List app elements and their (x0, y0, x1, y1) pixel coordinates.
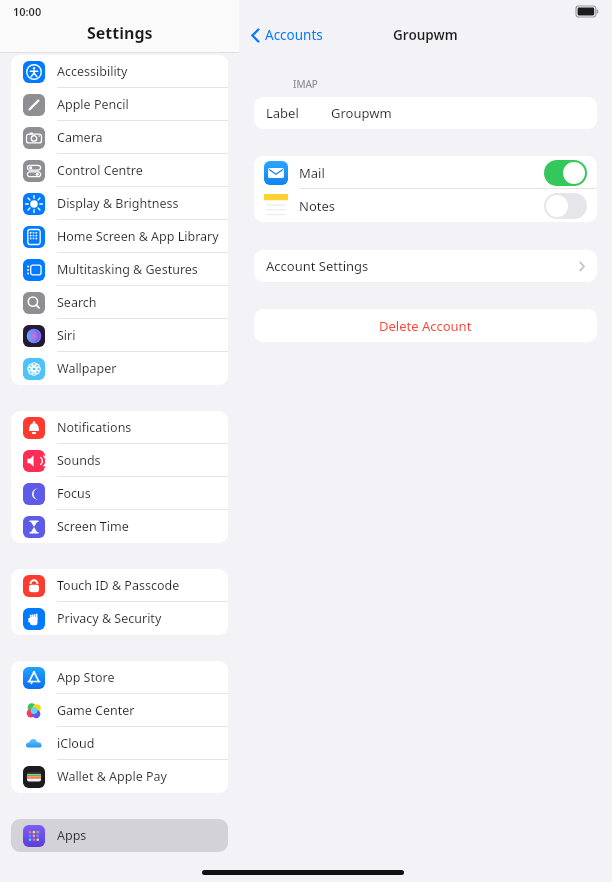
button[interactable]: Accounts (247, 23, 327, 47)
button[interactable]: Camera (11, 121, 228, 154)
button[interactable]: Screen Time (11, 510, 228, 543)
staticText: Sounds (57, 452, 101, 469)
staticText: Home Screen & App Library (57, 228, 219, 245)
staticText: IMAP (293, 77, 318, 91)
staticText: Accounts (265, 26, 323, 44)
staticText: Camera (57, 129, 103, 146)
staticText: Screen Time (57, 518, 129, 535)
button[interactable]: Home Screen & App Library (11, 220, 228, 253)
staticText: Game Center (57, 702, 135, 719)
staticText: Wallet & Apple Pay (57, 768, 167, 785)
button[interactable]: Accessibility (11, 55, 228, 88)
button[interactable]: On (544, 160, 587, 186)
staticText: Multitasking & Gestures (57, 261, 198, 278)
button[interactable]: Privacy & Security (11, 602, 228, 635)
staticText: Display & Brightness (57, 195, 179, 212)
staticText: 10:00 (13, 4, 42, 19)
staticText: Label (266, 104, 299, 122)
button[interactable]: Sounds (11, 444, 228, 477)
staticText: Groupwm (331, 104, 392, 122)
button[interactable]: Notes (254, 189, 597, 222)
button[interactable]: Focus (11, 477, 228, 510)
staticText: Touch ID & Passcode (57, 577, 180, 594)
staticText: Delete Account (379, 317, 472, 335)
staticText: Mail (299, 164, 325, 182)
staticText: Privacy & Security (57, 610, 162, 627)
staticText: Notes (299, 197, 335, 215)
button[interactable]: Control Centre (11, 154, 228, 187)
button[interactable]: Notifications (11, 411, 228, 444)
staticText: Siri (57, 327, 76, 344)
button[interactable]: Account Settings (254, 250, 597, 282)
button[interactable]: Off (544, 193, 587, 219)
button[interactable]: Mail (254, 156, 597, 189)
button[interactable]: Display & Brightness (11, 187, 228, 220)
staticText: Apps (57, 827, 87, 844)
staticText: Control Centre (57, 162, 143, 179)
staticText: Account Settings (266, 257, 369, 275)
button[interactable]: Apps (11, 819, 228, 852)
button[interactable]: Wallpaper (11, 352, 228, 385)
button[interactable]: Siri (11, 319, 228, 352)
staticText: iCloud (57, 735, 95, 752)
staticText: Wallpaper (57, 360, 117, 377)
staticText: Notifications (57, 419, 132, 436)
button[interactable]: Touch ID & Passcode (11, 569, 228, 602)
button[interactable]: Apple Pencil (11, 88, 228, 121)
button[interactable]: Game Center (11, 694, 228, 727)
button[interactable]: Search (11, 286, 228, 319)
staticText: Groupwm (393, 26, 458, 44)
staticText: Apple Pencil (57, 96, 129, 113)
button[interactable]: Wallet & Apple Pay (11, 760, 228, 793)
staticText: Focus (57, 485, 91, 502)
staticText: App Store (57, 669, 115, 686)
button[interactable]: App Store (11, 661, 228, 694)
staticText: Search (57, 294, 97, 311)
button[interactable]: Multitasking & Gestures (11, 253, 228, 286)
button[interactable]: iCloud (11, 727, 228, 760)
staticText: Settings (87, 22, 153, 44)
button[interactable]: Label (254, 97, 597, 129)
button[interactable]: Delete Account (254, 309, 597, 342)
staticText: Accessibility (57, 63, 128, 80)
